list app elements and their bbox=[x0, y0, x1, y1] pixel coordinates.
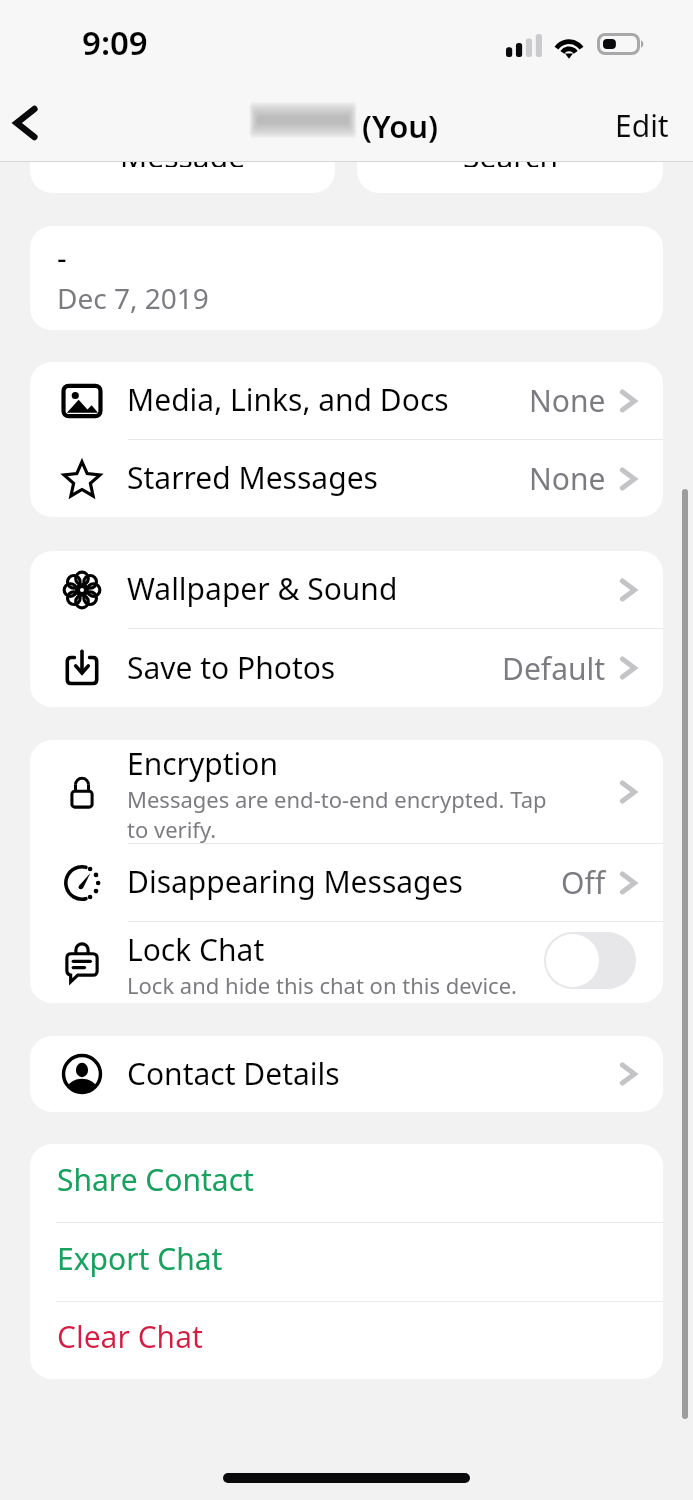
button[interactable]: Contact Details bbox=[30, 1036, 663, 1112]
button[interactable]: Clear Chat bbox=[30, 1302, 663, 1379]
button[interactable]: Save to Photos bbox=[30, 629, 663, 707]
button[interactable] bbox=[544, 932, 636, 989]
staticText: Edit bbox=[615, 105, 669, 146]
staticText: Clear Chat bbox=[57, 1316, 203, 1357]
button[interactable]: Message bbox=[30, 162, 335, 193]
button[interactable]: Export Chat bbox=[30, 1223, 663, 1301]
button[interactable]: Starred Messages bbox=[30, 440, 663, 517]
staticText: Wallpaper & Sound bbox=[127, 568, 398, 609]
staticText: Media, Links, and Docs bbox=[127, 379, 449, 420]
staticText: Default bbox=[502, 648, 606, 689]
button[interactable]: Media, Links, and Docs bbox=[30, 362, 663, 439]
staticText: (You) bbox=[362, 105, 439, 147]
button[interactable]: Search bbox=[357, 162, 663, 193]
staticText: Message bbox=[120, 162, 246, 167]
staticText: Lock and hide this chat on this device. bbox=[127, 970, 517, 1000]
button[interactable]: Share Contact bbox=[30, 1144, 663, 1222]
button[interactable]: Encryption bbox=[30, 740, 663, 843]
staticText: Contact Details bbox=[127, 1053, 340, 1094]
button[interactable]: Back bbox=[0, 90, 54, 156]
staticText: Disappearing Messages bbox=[127, 861, 463, 902]
staticText: Dec 7, 2019 bbox=[57, 279, 209, 317]
staticText: Export Chat bbox=[57, 1238, 223, 1279]
staticText: Messages are end-to-end encrypted. Tap t… bbox=[127, 784, 560, 844]
button[interactable]: Edit bbox=[595, 95, 689, 156]
staticText: Off bbox=[561, 862, 606, 903]
button[interactable]: Wallpaper & Sound bbox=[30, 551, 663, 628]
button[interactable]: Lock Chat bbox=[30, 922, 663, 1003]
staticText: Starred Messages bbox=[127, 457, 378, 498]
staticText: - bbox=[57, 237, 67, 278]
staticText: Save to Photos bbox=[127, 647, 336, 688]
staticText: Lock Chat bbox=[127, 929, 265, 970]
staticText: 9:09 bbox=[82, 20, 148, 65]
staticText: Search bbox=[463, 162, 558, 167]
staticText: None bbox=[529, 380, 606, 421]
staticText: Share Contact bbox=[57, 1159, 254, 1200]
staticText: Encryption bbox=[127, 743, 279, 784]
button[interactable]: Disappearing Messages bbox=[30, 844, 663, 921]
staticText: None bbox=[529, 458, 606, 499]
